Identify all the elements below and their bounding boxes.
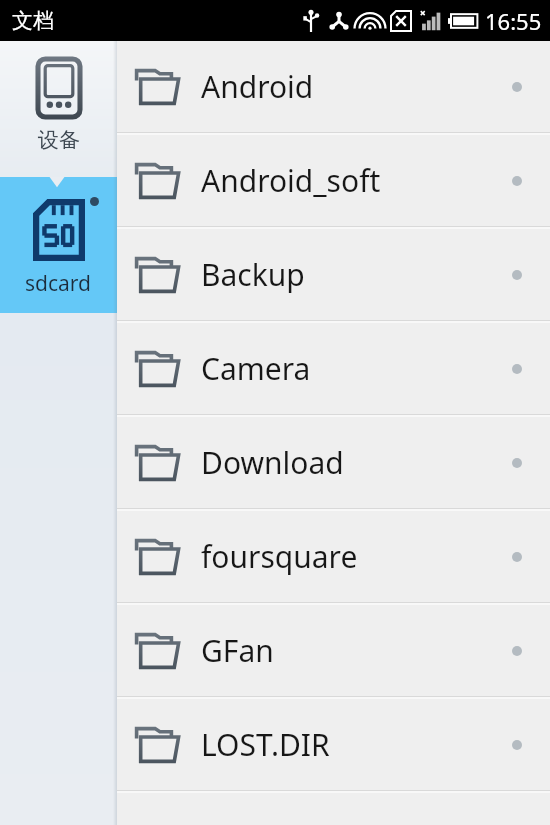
staticText: foursquare [201, 536, 512, 577]
button[interactable]: sdcard [0, 177, 117, 313]
staticText: sdcard [25, 269, 92, 298]
button[interactable]: Android_soft [117, 135, 550, 226]
button[interactable]: foursquare [117, 511, 550, 602]
staticText: 16:55 [485, 6, 542, 36]
staticText: GFan [201, 630, 512, 671]
staticText: LOST.DIR [201, 724, 512, 765]
button[interactable]: Download [117, 417, 550, 508]
staticText: Backup [201, 254, 512, 295]
staticText: Camera [201, 348, 512, 389]
staticText: 设备 [38, 127, 80, 153]
staticText: Android [201, 66, 512, 107]
button[interactable]: 设备 [0, 41, 117, 177]
staticText: Download [201, 442, 512, 483]
button[interactable]: Backup [117, 229, 550, 320]
staticText: Android_soft [201, 160, 512, 201]
staticText: 文档 [12, 8, 54, 34]
button[interactable]: Camera [117, 323, 550, 414]
button[interactable]: GFan [117, 605, 550, 696]
button[interactable]: Android [117, 41, 550, 132]
button[interactable]: LOST.DIR [117, 699, 550, 790]
